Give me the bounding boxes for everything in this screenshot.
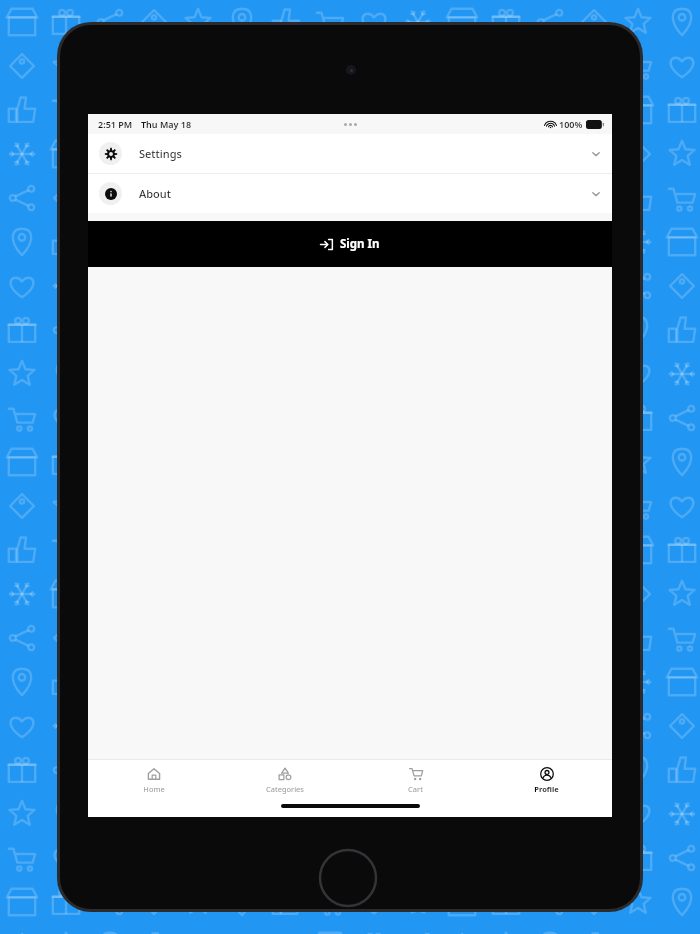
staticText: Thu May 18: [141, 118, 192, 130]
button[interactable]: Categories: [219, 760, 350, 804]
staticText: Sign In: [340, 236, 380, 252]
button[interactable]: Profile: [481, 760, 612, 804]
staticText: Settings: [139, 146, 182, 161]
staticText: 100%: [559, 118, 583, 130]
staticText: Categories: [266, 784, 304, 794]
button[interactable]: Home: [88, 760, 219, 804]
staticText: Cart: [408, 784, 423, 794]
staticText: About: [139, 186, 171, 201]
button[interactable]: Sign In: [88, 221, 612, 267]
staticText: 2:51 PM: [98, 118, 133, 130]
button[interactable]: Cart: [350, 760, 481, 804]
staticText: Home: [143, 784, 165, 794]
button[interactable]: About: [88, 174, 612, 213]
staticText: Profile: [534, 784, 559, 794]
button[interactable]: Settings: [88, 134, 612, 173]
